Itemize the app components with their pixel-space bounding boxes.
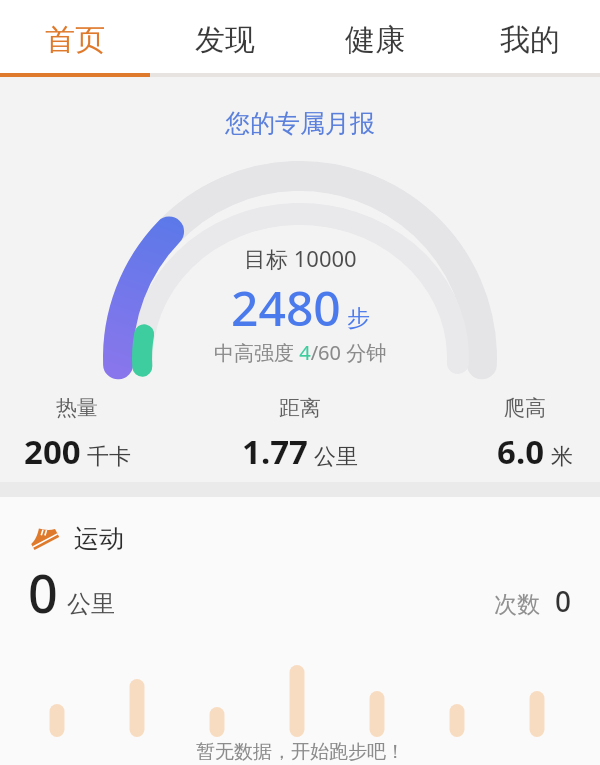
staticText: 发现 xyxy=(195,21,255,59)
staticText: 暂无数据，开始跑步吧！ xyxy=(196,740,405,764)
button[interactable]: 健康 xyxy=(300,0,450,73)
staticText: 中高强度 4/60 分钟 xyxy=(214,339,387,366)
staticText: 米 xyxy=(551,443,573,471)
staticText: 爬高 xyxy=(504,395,546,421)
staticText: 距离 xyxy=(279,395,321,421)
staticText: 步 xyxy=(347,304,370,333)
staticText: 6.0 xyxy=(497,429,545,474)
staticText: 健康 xyxy=(345,21,405,59)
staticText: 0 xyxy=(555,582,572,620)
staticText: 0 xyxy=(28,557,58,628)
staticText: 次数 xyxy=(494,590,540,619)
staticText: 运动 xyxy=(74,523,124,554)
staticText: 我的 xyxy=(500,21,560,59)
button[interactable]: 运动 xyxy=(28,523,124,554)
button[interactable]: 首页 xyxy=(0,0,150,73)
staticText: 公里 xyxy=(314,443,358,471)
staticText: 千卡 xyxy=(87,443,131,471)
staticText: 热量 xyxy=(56,395,98,421)
button[interactable]: 我的 xyxy=(450,0,600,73)
staticText: 2480 xyxy=(231,275,341,340)
button[interactable]: 发现 xyxy=(150,0,300,73)
staticText: 公里 xyxy=(67,589,115,619)
button[interactable]: 您的专属月报 xyxy=(225,108,375,139)
staticText: 200 xyxy=(24,429,81,474)
staticText: 目标 10000 xyxy=(244,243,357,273)
staticText: 首页 xyxy=(45,21,105,59)
staticText: 1.77 xyxy=(242,429,308,474)
